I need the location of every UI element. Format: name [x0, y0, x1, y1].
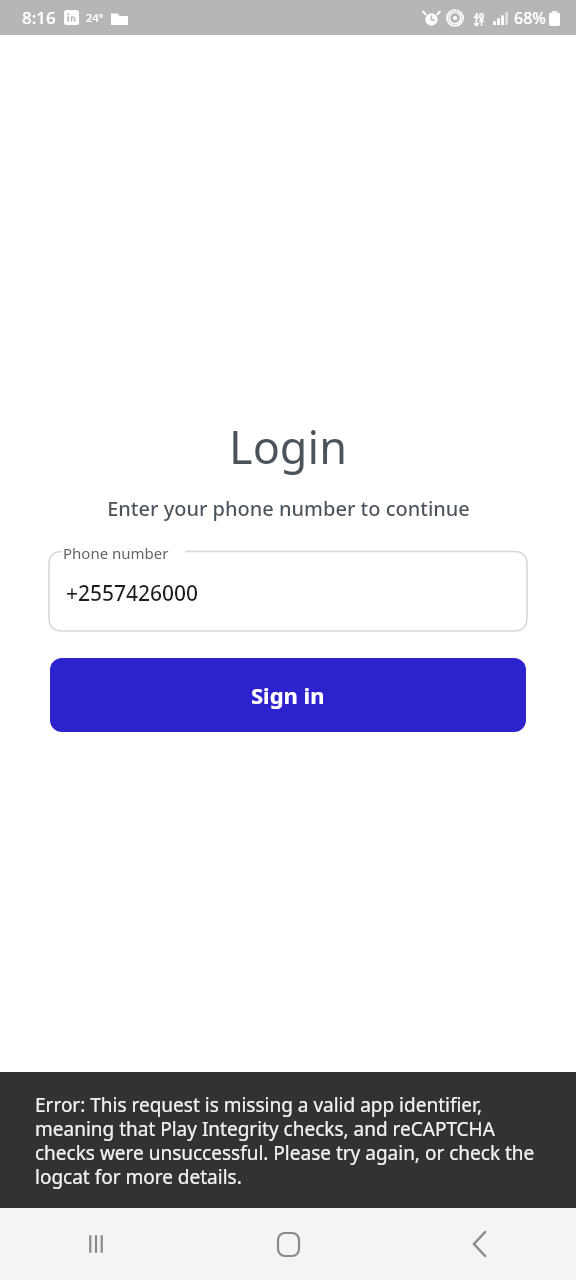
button[interactable]: Phone number: [49, 543, 527, 631]
button[interactable]: Error: This request is missing a valid a…: [0, 1072, 576, 1208]
staticText: Phone number: [63, 543, 169, 563]
staticText: 4G: [474, 10, 485, 21]
staticText: Sign in: [251, 680, 325, 710]
button[interactable]: Recent apps: [0, 1208, 192, 1280]
button[interactable]: Sign in: [50, 658, 526, 732]
staticText: 68%: [514, 7, 546, 29]
button[interactable]: Home: [192, 1208, 384, 1280]
staticText: 8:16: [22, 6, 56, 29]
staticText: Error: This request is missing a valid a…: [35, 1092, 536, 1189]
staticText: Login: [229, 416, 347, 477]
staticText: +2557426000: [66, 579, 199, 608]
button[interactable]: Back: [384, 1208, 576, 1280]
staticText: Enter your phone number to continue: [107, 495, 470, 522]
staticText: 24°: [86, 10, 104, 25]
